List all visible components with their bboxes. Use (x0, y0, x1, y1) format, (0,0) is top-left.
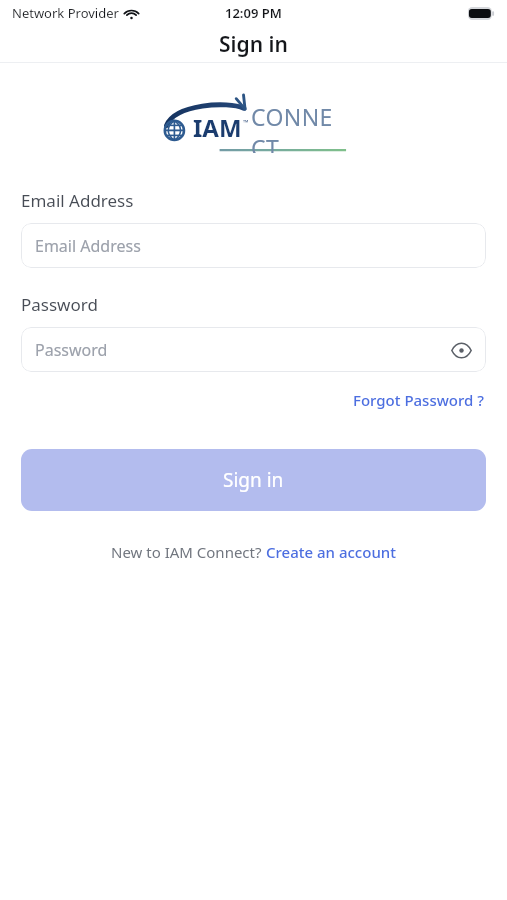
button[interactable]: Forgot Password ? (351, 387, 486, 413)
staticText: New to IAM Connect? (111, 542, 266, 562)
staticText: Sign in (223, 467, 284, 493)
staticText: Forgot Password ? (353, 390, 484, 410)
button[interactable]: Sign in (21, 449, 486, 511)
button[interactable]: Show password (446, 335, 476, 365)
staticText: Sign in (219, 30, 288, 59)
staticText: Password (35, 339, 446, 361)
button[interactable]: Create an account (266, 542, 396, 562)
staticText: ™ (243, 118, 249, 128)
staticText: Email Address (35, 235, 476, 257)
staticText: Email Address (21, 189, 134, 212)
staticText: Password (21, 293, 98, 316)
staticText: Network Provider (12, 4, 119, 22)
staticText: Create an account (266, 542, 396, 562)
button[interactable]: Password (21, 327, 486, 372)
staticText: CONNECT (251, 101, 347, 153)
button[interactable]: Email Address (21, 223, 486, 268)
staticText: 12:09 PM (225, 4, 282, 22)
staticText: IAM (193, 111, 242, 144)
